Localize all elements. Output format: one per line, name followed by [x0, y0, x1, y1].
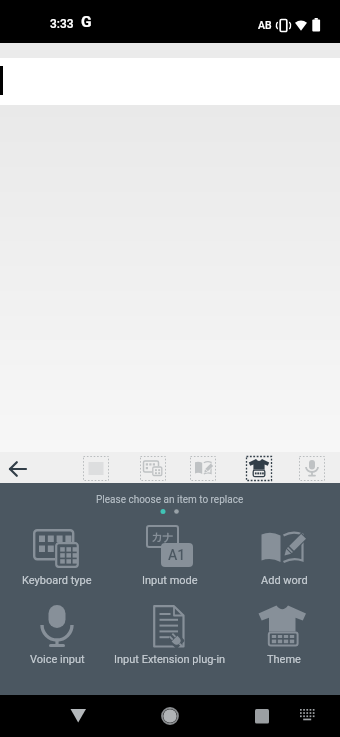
- staticText: Keyboard type: [22, 574, 92, 587]
- staticText: A1: [168, 547, 186, 563]
- button[interactable]: [0, 599, 113, 675]
- staticText: 3:33: [50, 17, 74, 31]
- staticText: Add word: [261, 574, 308, 587]
- button[interactable]: [4, 454, 30, 480]
- button[interactable]: [83, 456, 109, 481]
- button[interactable]: [140, 456, 166, 481]
- button[interactable]: [113, 521, 226, 597]
- button[interactable]: [227, 599, 340, 675]
- button[interactable]: [113, 599, 226, 675]
- button[interactable]: [296, 703, 320, 725]
- staticText: Input Extension plug-in: [114, 653, 226, 666]
- button[interactable]: [190, 456, 216, 481]
- staticText: G: [81, 13, 92, 31]
- button[interactable]: [227, 521, 340, 597]
- button[interactable]: [299, 456, 325, 481]
- staticText: Voice input: [30, 653, 85, 666]
- staticText: AB: [258, 19, 272, 31]
- staticText: Please choose an item to replace: [96, 494, 244, 506]
- staticText: Input mode: [142, 574, 198, 587]
- button[interactable]: [62, 701, 94, 731]
- button[interactable]: [246, 456, 272, 481]
- button[interactable]: [0, 58, 340, 105]
- staticText: カナ: [151, 530, 174, 544]
- button[interactable]: [0, 521, 113, 597]
- button[interactable]: [154, 701, 186, 731]
- staticText: Theme: [267, 653, 301, 666]
- button[interactable]: [246, 701, 278, 731]
